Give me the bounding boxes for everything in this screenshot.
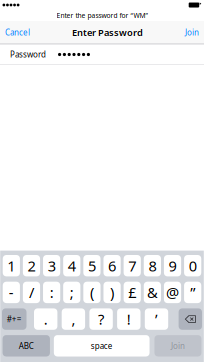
button[interactable]: 9 <box>164 255 181 276</box>
button[interactable]: / <box>23 282 40 303</box>
button[interactable]: , <box>62 308 85 330</box>
button[interactable]: Delete <box>179 308 202 330</box>
staticText: 7 <box>128 256 136 275</box>
staticText: £ <box>128 283 136 302</box>
staticText: 6 <box>108 256 116 275</box>
button[interactable]: Join <box>185 27 199 38</box>
button[interactable]: ) <box>103 282 121 303</box>
staticText: 1 <box>7 256 15 275</box>
button[interactable]: & <box>144 282 161 303</box>
staticText: , <box>71 309 75 329</box>
staticText: 3 <box>48 256 56 275</box>
button[interactable]: 5 <box>83 255 100 276</box>
button[interactable]: ? <box>89 308 113 330</box>
button[interactable]: 0 <box>184 255 201 276</box>
staticText: : <box>50 283 54 302</box>
staticText: Password <box>10 49 46 60</box>
staticText: Cancel <box>5 27 30 38</box>
staticText: Join <box>171 340 185 351</box>
staticText: space <box>91 340 113 351</box>
staticText: 5 <box>88 256 96 275</box>
button[interactable]: 6 <box>103 255 121 276</box>
button[interactable]: ABC <box>2 335 50 356</box>
staticText: ! <box>127 309 131 329</box>
button[interactable]: - <box>3 282 20 303</box>
button[interactable]: space <box>54 335 149 356</box>
button[interactable]: Join <box>154 335 201 356</box>
button[interactable]: 1 <box>3 255 20 276</box>
button[interactable]: Cancel <box>5 27 30 38</box>
button[interactable]: 2 <box>23 255 40 276</box>
staticText: . <box>44 309 48 329</box>
staticText: Enter the password for “WM” <box>56 11 147 20</box>
staticText: Join <box>185 27 199 38</box>
button[interactable]: : <box>43 282 60 303</box>
staticText: ; <box>70 283 74 302</box>
staticText: 2 <box>27 256 35 275</box>
button[interactable]: . <box>34 308 57 330</box>
staticText: ” <box>190 283 195 302</box>
staticText: / <box>29 283 34 302</box>
staticText: & <box>147 283 158 302</box>
button[interactable]: @ <box>164 282 181 303</box>
staticText: Enter Password <box>72 26 143 39</box>
staticText: ? <box>98 309 104 329</box>
staticText: ’ <box>155 309 158 329</box>
staticText: 9 <box>168 256 176 275</box>
staticText: 8 <box>148 256 156 275</box>
staticText: - <box>9 283 14 302</box>
staticText: @ <box>166 283 179 302</box>
button[interactable]: 8 <box>144 255 161 276</box>
staticText: 0 <box>189 256 197 275</box>
button[interactable]: 3 <box>43 255 60 276</box>
button[interactable]: ! <box>117 308 140 330</box>
staticText: ABC <box>19 340 34 351</box>
staticText: ( <box>90 283 94 302</box>
button[interactable]: ( <box>83 282 100 303</box>
button[interactable]: ’ <box>145 308 168 330</box>
button[interactable]: #+= <box>2 308 26 330</box>
button[interactable]: £ <box>124 282 141 303</box>
staticText: ) <box>110 283 114 302</box>
button[interactable]: ” <box>184 282 201 303</box>
button[interactable]: 4 <box>63 255 80 276</box>
staticText: #+= <box>7 314 22 324</box>
staticText: 4 <box>68 256 76 275</box>
button[interactable]: 7 <box>124 255 141 276</box>
button[interactable]: ; <box>63 282 80 303</box>
